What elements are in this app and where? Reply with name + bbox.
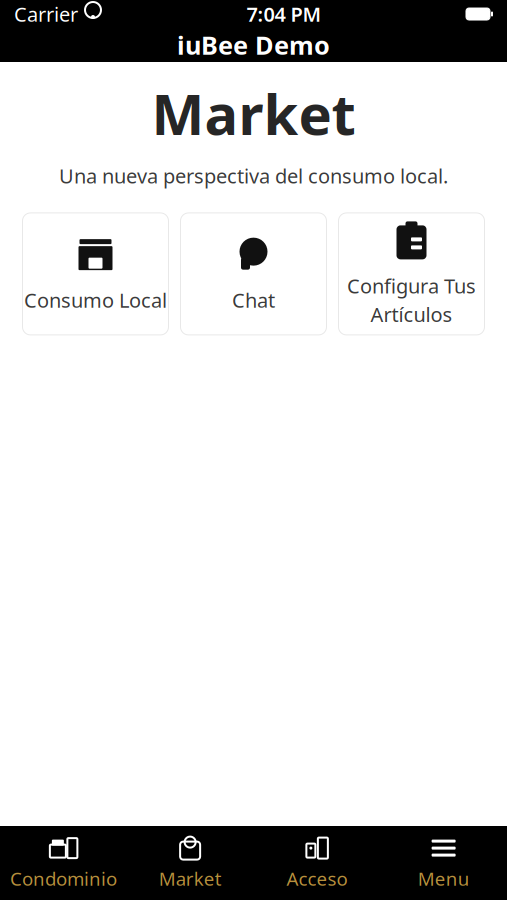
button[interactable]: Market — [127, 826, 254, 900]
button[interactable]: Acceso — [253, 826, 380, 900]
staticText: Artículos — [370, 301, 452, 327]
staticText: Market — [151, 76, 355, 150]
staticText: Consumo Local — [24, 287, 167, 313]
staticText: Configura Tus — [347, 272, 476, 299]
button[interactable]: Consumo Local — [22, 213, 168, 335]
button[interactable]: Chat — [180, 213, 326, 335]
staticText: Market — [159, 866, 222, 891]
button[interactable]: Menu — [380, 826, 507, 900]
staticText: Carrier — [14, 1, 78, 27]
staticText: Menu — [418, 866, 470, 891]
staticText: Acceso — [286, 866, 347, 891]
staticText: Chat — [232, 287, 275, 313]
staticText: Una nueva perspectiva del consumo local. — [59, 162, 448, 189]
staticText: Condominio — [10, 866, 117, 891]
staticText: iuBee Demo — [177, 28, 330, 62]
staticText: 7:04 PM — [246, 1, 321, 27]
button[interactable]: Configura Tus — [338, 213, 484, 335]
button[interactable]: Condominio — [0, 826, 127, 900]
